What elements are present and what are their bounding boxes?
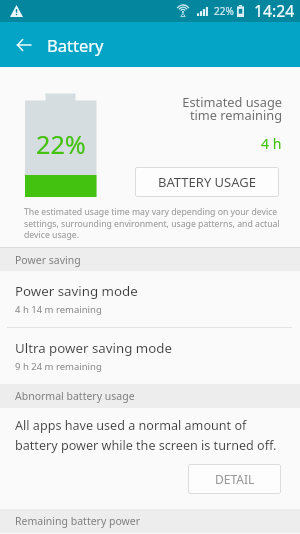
staticText: Ultra power saving mode	[15, 339, 172, 357]
staticText: 22%	[36, 127, 86, 161]
staticText: 22%	[214, 4, 234, 18]
staticText: 14:24	[254, 0, 295, 22]
staticText: Remaining battery power	[15, 514, 141, 528]
button[interactable]: Power saving mode	[0, 271, 300, 327]
staticText: The estimated usage time may vary depend…	[24, 206, 284, 240]
staticText: 4 h 14 m remaining	[15, 303, 102, 316]
staticText: Battery	[47, 34, 104, 56]
button[interactable]: BATTERY USAGE	[135, 167, 279, 197]
staticText: Power saving mode	[15, 282, 138, 300]
staticText: 9 h 24 m remaining	[15, 360, 102, 373]
staticText: DETAIL	[215, 471, 255, 487]
button[interactable]: Ultra power saving mode	[0, 328, 300, 384]
staticText: All apps have used a normal amount of ba…	[15, 417, 287, 454]
staticText: 4 h	[261, 134, 282, 153]
staticText: Estimated usage time remaining	[182, 93, 282, 124]
button[interactable]: DETAIL	[188, 464, 281, 494]
other: Warning	[10, 5, 23, 17]
button[interactable]: Navigate up	[9, 31, 36, 58]
staticText: Abnormal battery usage	[15, 389, 135, 403]
staticText: BATTERY USAGE	[158, 173, 256, 191]
staticText: Power saving	[15, 253, 81, 267]
